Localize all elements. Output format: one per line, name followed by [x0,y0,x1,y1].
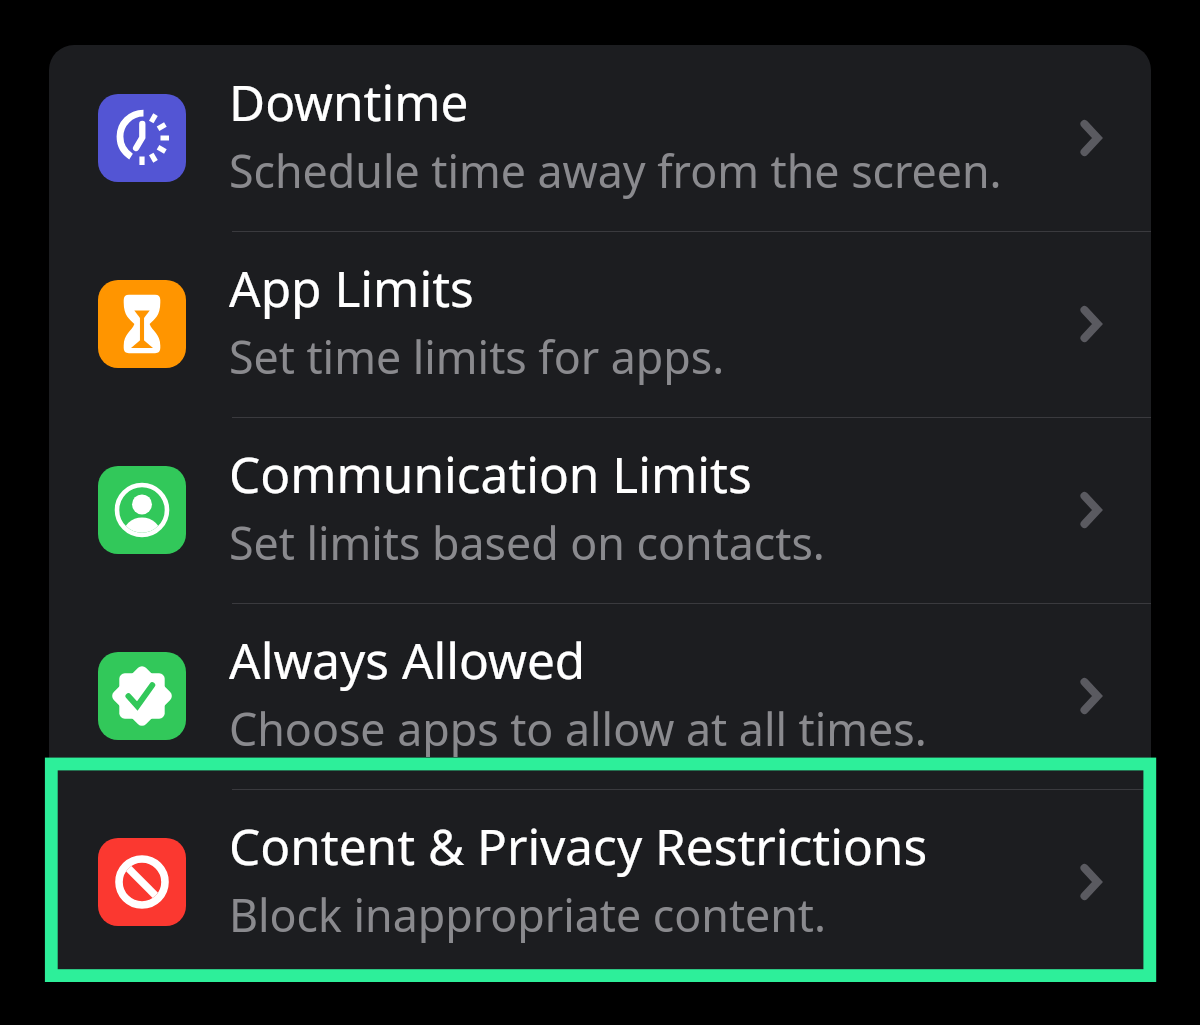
staticText: Set time limits for apps. [229,326,725,387]
staticText: Communication Limits [229,440,752,507]
other: Open Content & Privacy Restrictions [1061,852,1121,912]
other: Open App Limits [1061,294,1121,354]
staticText: Block inappropriate content. [229,884,826,945]
staticText: Downtime [229,68,469,135]
button[interactable]: Content & Privacy Restrictions [49,789,1151,975]
staticText: Schedule time away from the screen. [229,140,1002,201]
other: Open Downtime [1061,108,1121,168]
button[interactable]: Always Allowed [49,603,1151,789]
button[interactable]: Communication Limits [49,417,1151,603]
button[interactable]: Downtime [49,45,1151,231]
other: Open Communication Limits [1061,480,1121,540]
staticText: Set limits based on contacts. [229,512,825,573]
other: Open Always Allowed [1061,666,1121,726]
staticText: Choose apps to allow at all times. [229,698,927,759]
staticText: App Limits [229,254,474,321]
staticText: Always Allowed [229,626,586,693]
button[interactable]: App Limits [49,231,1151,417]
staticText: Content & Privacy Restrictions [229,812,928,879]
